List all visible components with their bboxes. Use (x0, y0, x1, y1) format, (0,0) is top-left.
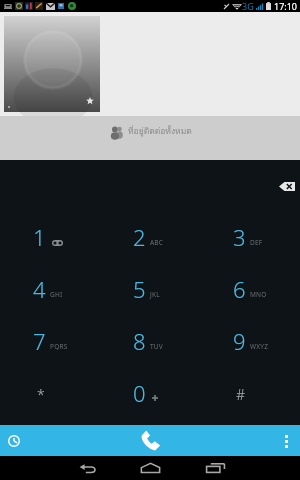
button[interactable]: 1 (0, 211, 100, 263)
button[interactable]: 6 (200, 263, 300, 315)
staticText: JKL (150, 290, 160, 299)
staticText: 3 (233, 222, 246, 252)
staticText: GHI (50, 290, 63, 299)
staticText: 8 (133, 326, 146, 356)
staticText: 0 (133, 378, 146, 408)
button[interactable]: 3 (200, 211, 300, 263)
staticText: 6 (233, 274, 246, 304)
staticText: ที่อยู่ติดต่อทั้งหมด (128, 124, 192, 138)
button[interactable]: 8 (100, 315, 200, 367)
button[interactable]: Call (134, 425, 166, 456)
staticText: ABC (150, 238, 164, 247)
button[interactable]: Recents (201, 456, 229, 480)
button[interactable]: 4 (0, 263, 100, 315)
button[interactable]: # (200, 367, 300, 419)
staticText: 3G (242, 0, 254, 12)
button[interactable]: Contact photo (4, 16, 100, 112)
staticText: MNO (250, 290, 267, 299)
staticText: 2 (133, 222, 146, 252)
button[interactable]: 7 (0, 315, 100, 367)
staticText: PQRS (50, 342, 68, 351)
staticText: 9 (233, 326, 246, 356)
button[interactable]: Call history (0, 427, 28, 455)
button[interactable]: Backspace (267, 169, 300, 203)
button[interactable]: 9 (200, 315, 300, 367)
staticText: DEF (250, 238, 263, 247)
button[interactable]: 5 (100, 263, 200, 315)
button[interactable]: Home (136, 456, 164, 480)
button[interactable]: More options (272, 427, 300, 455)
staticText: TUV (150, 342, 163, 351)
staticText: 1 (33, 222, 46, 252)
button[interactable]: * (0, 367, 100, 419)
button[interactable]: 0 (100, 367, 200, 419)
staticText: WXYZ (250, 342, 269, 351)
button[interactable]: 2 (100, 211, 200, 263)
button[interactable]: Back (73, 456, 101, 480)
staticText: # (236, 385, 246, 404)
staticText: 7 (33, 326, 46, 356)
button[interactable]: ที่อยู่ติดต่อทั้งหมด (0, 116, 300, 160)
staticText: 5 (133, 274, 146, 304)
staticText: * (37, 385, 45, 404)
staticText: 17:10 (274, 0, 298, 12)
staticText: 4 (33, 274, 46, 304)
